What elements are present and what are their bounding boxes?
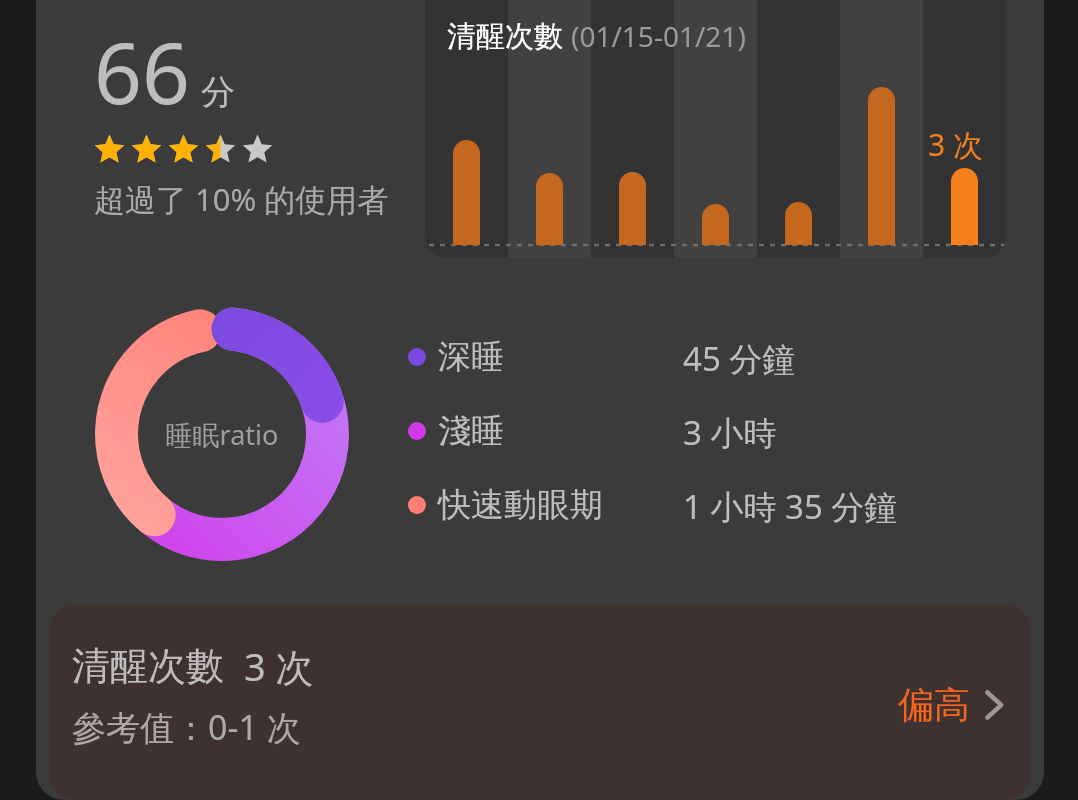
staticText: 參考值：0-1 次	[72, 704, 301, 750]
staticText: 清醒次數	[447, 18, 563, 55]
staticText: 深睡	[438, 336, 504, 378]
staticText: 66	[94, 14, 191, 128]
button[interactable]: 快速動眼期	[408, 484, 898, 526]
button[interactable]: 清醒次數	[425, 0, 1006, 258]
staticText: 偏高	[898, 682, 970, 727]
staticText: 3 次	[244, 640, 314, 692]
staticText: 淺睡	[438, 410, 504, 452]
staticText: 清醒次數	[72, 642, 224, 690]
other: 查看詳情	[982, 684, 1006, 726]
staticText: (01/15-01/21)	[571, 17, 746, 55]
button[interactable]: 清醒次數	[50, 604, 1030, 800]
staticText: 分	[201, 71, 235, 114]
staticText: 3 次	[928, 124, 983, 165]
staticText: 快速動眼期	[438, 484, 603, 526]
staticText: 1 小時 35 分鐘	[683, 484, 898, 526]
button[interactable]: 深睡	[408, 336, 796, 378]
staticText: 3 小時	[683, 410, 777, 452]
staticText: 45 分鐘	[683, 336, 796, 378]
staticText: 超過了 10% 的使用者	[94, 178, 389, 220]
staticText: 睡眠ratio	[163, 416, 281, 453]
button[interactable]: 淺睡	[408, 410, 777, 452]
